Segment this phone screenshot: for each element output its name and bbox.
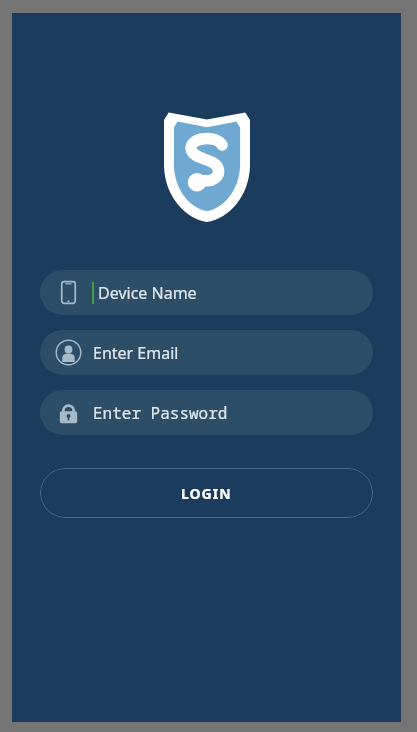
button[interactable]: Email field xyxy=(40,330,373,375)
button[interactable]: Password field xyxy=(40,390,373,435)
button[interactable]: LOGIN xyxy=(40,468,373,518)
staticText: Device Name xyxy=(98,282,197,304)
button[interactable]: Device name field xyxy=(40,270,373,315)
staticText: LOGIN xyxy=(181,484,232,503)
staticText: Enter Email xyxy=(93,342,179,364)
staticText: Enter Password xyxy=(93,402,228,424)
